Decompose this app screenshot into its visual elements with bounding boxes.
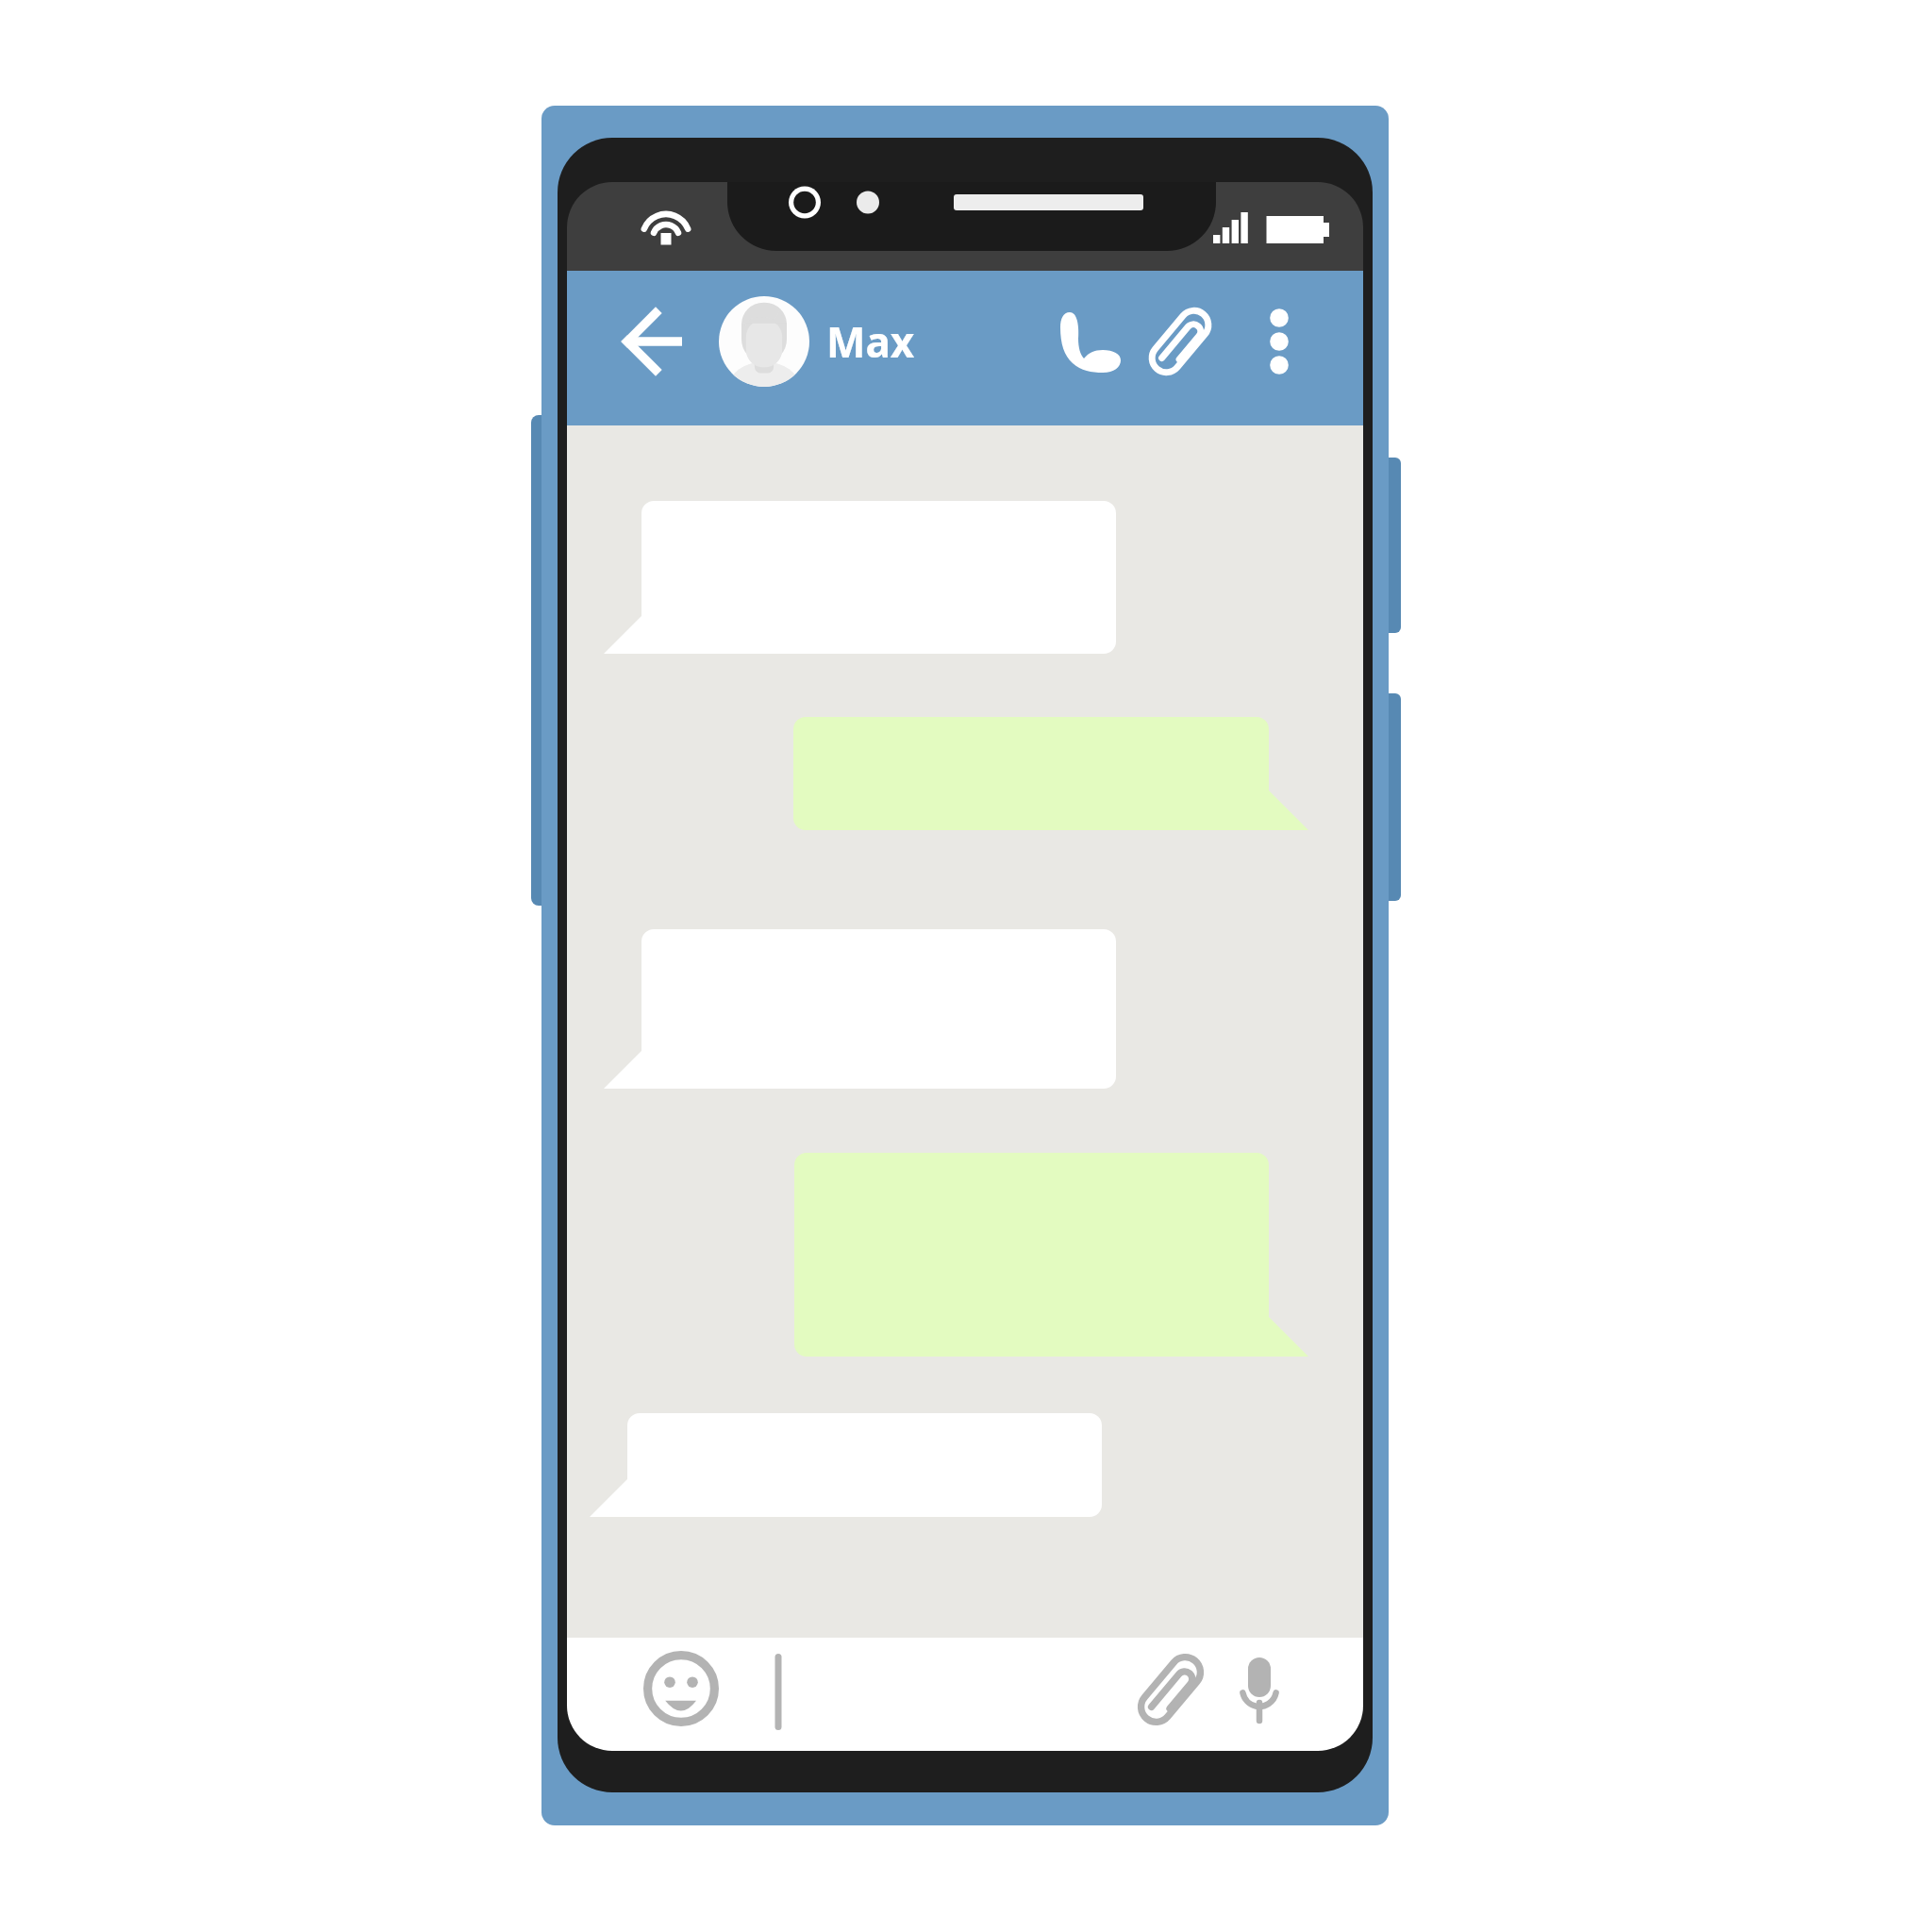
button[interactable]: More options (1241, 292, 1325, 391)
button[interactable]: Call (1038, 292, 1141, 391)
button[interactable]: Max, contact profile (712, 292, 1024, 391)
button[interactable]: Insert emoji (634, 1641, 728, 1736)
button[interactable]: Sent message 2 (794, 1153, 1307, 1357)
button[interactable]: Attach (1123, 1641, 1217, 1736)
button[interactable]: Voice message (1222, 1641, 1307, 1736)
button[interactable]: Back (590, 292, 693, 391)
button[interactable]: Message input field (745, 1641, 1104, 1736)
button[interactable]: Received message 1 (605, 501, 1116, 655)
button[interactable]: Received message 2 (605, 929, 1116, 1089)
button[interactable]: Sent message 1 (793, 717, 1307, 830)
button[interactable]: Attach file (1132, 292, 1236, 391)
button[interactable]: Received message 3 (591, 1413, 1102, 1517)
